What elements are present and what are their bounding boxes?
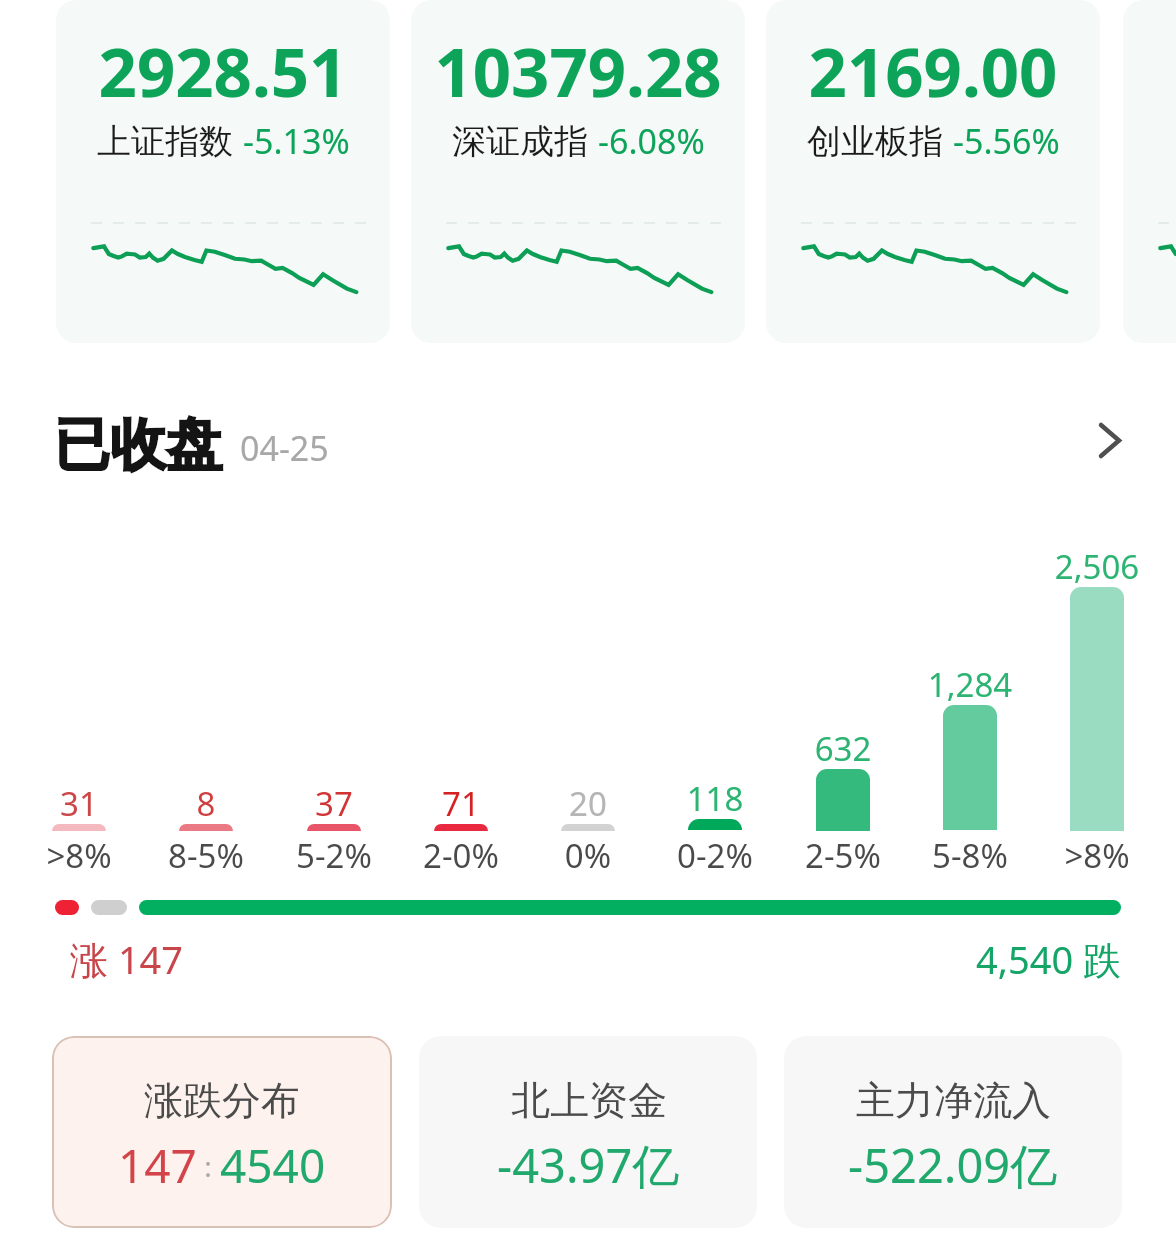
staticText: 37 bbox=[259, 781, 409, 826]
staticText: 8-5% bbox=[131, 833, 281, 878]
staticText: -5.56% bbox=[953, 118, 1060, 164]
staticText: 1,284 bbox=[895, 662, 1045, 707]
staticText: 上证指数 bbox=[97, 120, 233, 163]
staticText: 20 bbox=[513, 781, 663, 826]
staticText: 2169.00 bbox=[766, 25, 1100, 116]
staticText: 4540 bbox=[220, 1134, 326, 1197]
staticText: 5-2% bbox=[259, 833, 409, 878]
staticText: 0% bbox=[513, 833, 663, 878]
other: More bbox=[1082, 423, 1126, 467]
staticText: 632 bbox=[768, 726, 918, 771]
staticText: 2-0% bbox=[386, 833, 536, 878]
button[interactable]: 北上资金 bbox=[419, 1036, 757, 1228]
button[interactable]: 2169.00 bbox=[766, 0, 1100, 343]
staticText: -522.09亿 bbox=[848, 1133, 1058, 1197]
staticText: 10379.28 bbox=[411, 25, 745, 116]
staticText: 8 bbox=[131, 781, 281, 826]
button[interactable]: 2928.51 bbox=[56, 0, 390, 343]
staticText: 04-25 bbox=[240, 425, 329, 471]
staticText: 涨跌分布 bbox=[144, 1076, 300, 1125]
staticText: 31 bbox=[4, 781, 154, 826]
staticText: : bbox=[197, 1147, 220, 1185]
button[interactable]: 涨跌分布图 bbox=[40, 520, 1136, 875]
staticText: 71 bbox=[386, 781, 536, 826]
staticText: >8% bbox=[1022, 833, 1172, 878]
staticText: 创业板指 bbox=[807, 120, 943, 163]
staticText: 主力净流入 bbox=[856, 1076, 1051, 1125]
staticText: 4,540 跌 bbox=[700, 933, 1121, 985]
staticText: 深证成指 bbox=[452, 120, 588, 163]
button[interactable]: 872.16 bbox=[1123, 0, 1176, 343]
staticText: 2928.51 bbox=[56, 25, 390, 116]
staticText: -5.13% bbox=[243, 118, 350, 164]
staticText: 涨 147 bbox=[70, 933, 184, 985]
button[interactable]: 10379.28 bbox=[411, 0, 745, 343]
staticText: -43.97亿 bbox=[497, 1133, 680, 1197]
button[interactable]: 涨跌分布 bbox=[52, 1036, 392, 1228]
button[interactable]: 主力净流入 bbox=[784, 1036, 1122, 1228]
staticText: 5-8% bbox=[895, 833, 1045, 878]
staticText: 2-5% bbox=[768, 833, 918, 878]
staticText: 0-2% bbox=[640, 833, 790, 878]
staticText: 2,506 bbox=[1022, 544, 1172, 589]
staticText: >8% bbox=[4, 833, 154, 878]
button[interactable]: 已收盘 bbox=[54, 405, 1126, 485]
staticText: 北上资金 bbox=[511, 1076, 667, 1125]
staticText: 147 bbox=[118, 1134, 197, 1197]
staticText: 已收盘 bbox=[54, 410, 222, 481]
staticText: -6.08% bbox=[598, 118, 705, 164]
staticText: 118 bbox=[640, 776, 790, 821]
